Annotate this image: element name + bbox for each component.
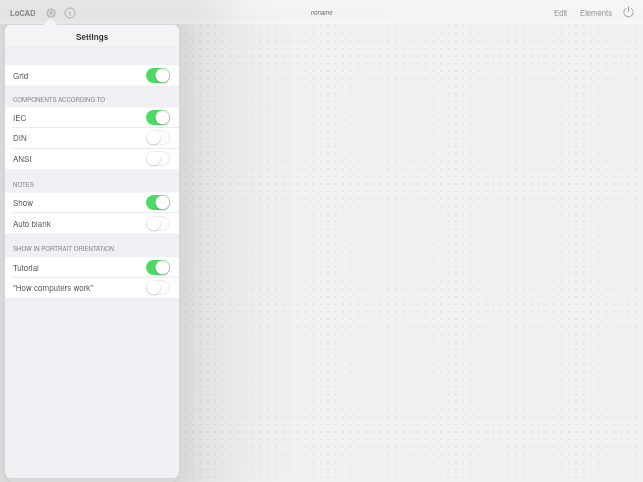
button[interactable]: "How computers work" [5,277,179,297]
button[interactable]: Grid [5,65,179,86]
staticText: COMPONENTS ACCORDING TO [13,95,106,104]
staticText: Edit [554,7,568,18]
staticText: Grid [13,70,29,81]
button[interactable]: ANSI [5,148,179,168]
staticText: NOTES [13,180,34,189]
staticText: LoCAD [10,7,36,18]
button[interactable]: Settings [42,4,59,21]
button[interactable]: Auto blank [5,213,179,233]
staticText: noname [311,8,333,17]
staticText: SHOW IN PORTRAIT ORIENTATION [13,244,115,253]
button[interactable]: Info [61,4,78,21]
staticText: Auto blank [13,218,51,229]
button[interactable]: Edit [547,2,574,22]
button[interactable]: Tutorial [5,257,179,277]
staticText: ANSI [13,153,32,164]
button[interactable]: DIN [5,127,179,148]
staticText: Elements [580,7,613,18]
staticText: Show [13,197,33,208]
staticText: IEC [13,112,27,123]
button[interactable]: Elements [574,2,619,22]
staticText: Settings [76,31,109,43]
button[interactable]: Show [5,192,179,213]
staticText: "How computers work" [13,282,94,293]
staticText: DIN [13,132,27,143]
staticText: Tutorial [13,262,39,273]
button[interactable]: Power [620,3,637,20]
button[interactable]: IEC [5,107,179,127]
